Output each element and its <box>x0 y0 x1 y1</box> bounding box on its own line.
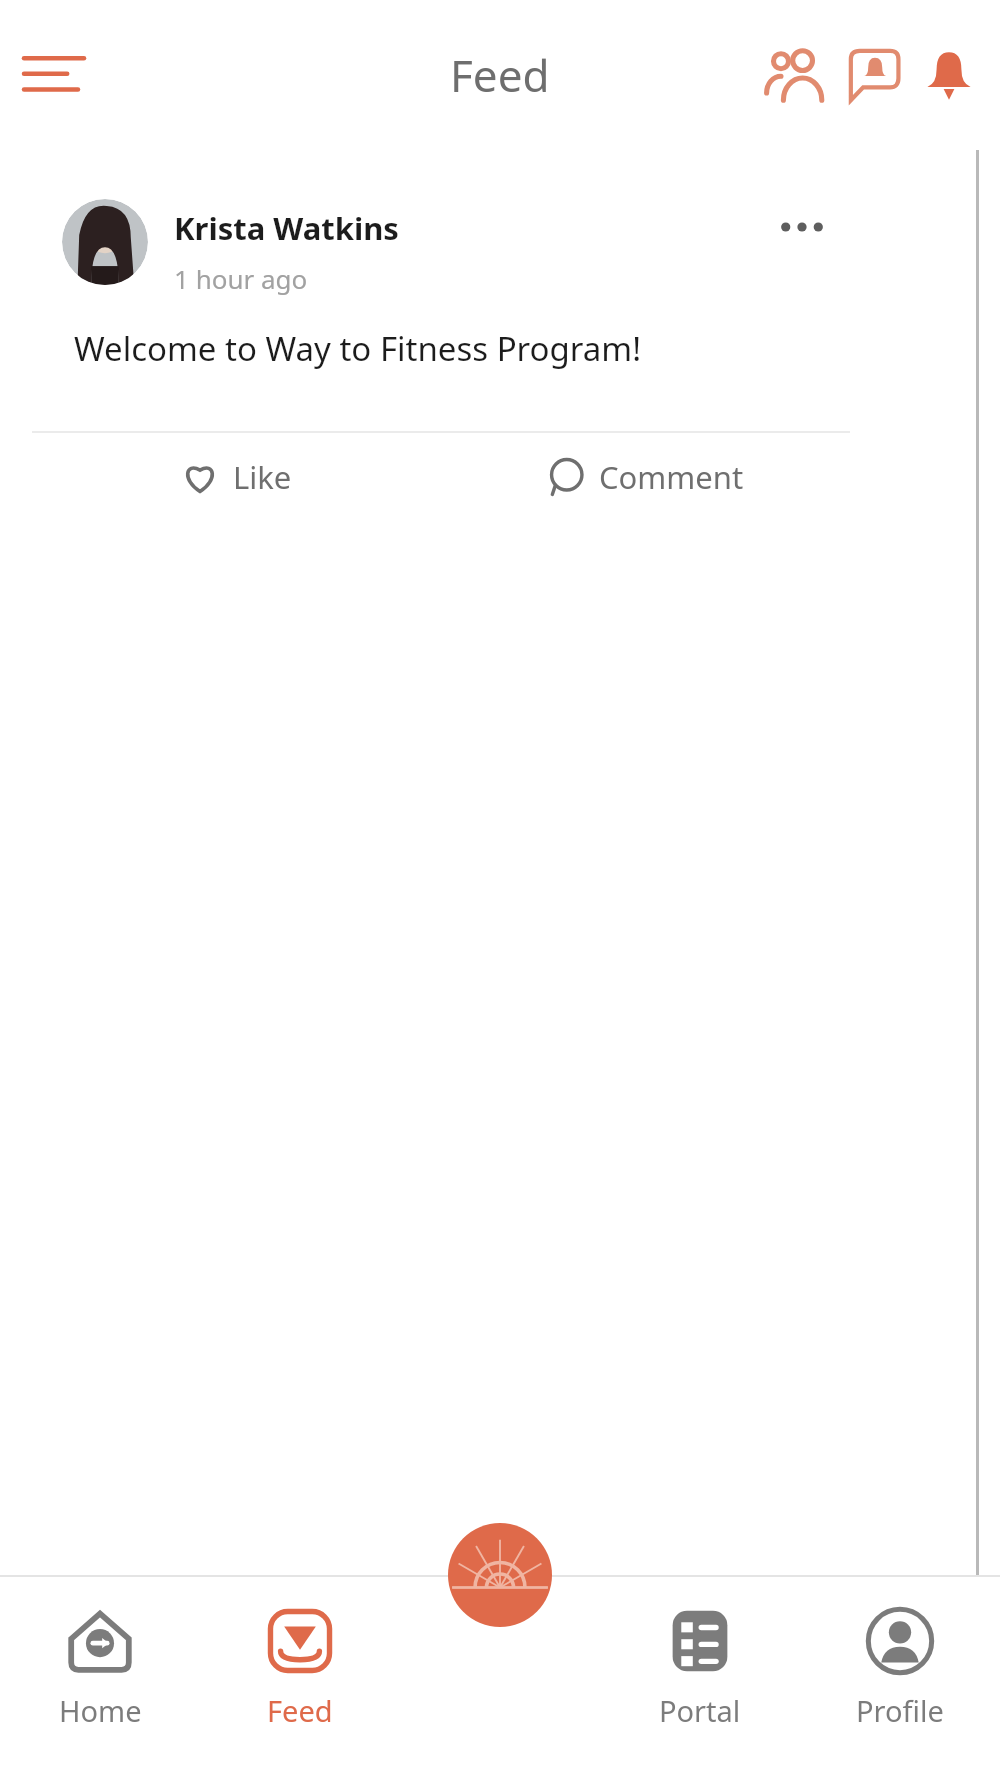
button[interactable]: Feed <box>200 1577 400 1778</box>
staticText: Feed <box>267 1691 333 1730</box>
button[interactable]: Home <box>0 1577 200 1778</box>
button[interactable]: Comment <box>441 433 850 521</box>
button[interactable]: Friends <box>754 36 832 114</box>
staticText: Welcome to Way to Fitness Program! <box>74 326 642 371</box>
button[interactable]: Portal <box>600 1577 800 1778</box>
staticText: Krista Watkins <box>174 207 399 249</box>
staticText: Like <box>233 456 292 498</box>
button[interactable]: Notifications <box>910 36 988 114</box>
staticText: Feed <box>450 45 550 105</box>
staticText: Portal <box>659 1691 741 1730</box>
staticText: Comment <box>599 456 744 498</box>
button[interactable]: More options <box>774 199 830 255</box>
button[interactable]: Menu <box>16 37 92 113</box>
button[interactable]: Like <box>32 433 441 521</box>
button[interactable]: Create post <box>448 1523 552 1627</box>
button[interactable]: Profile <box>800 1577 1000 1778</box>
button[interactable]: Krista Watkins <box>32 175 850 521</box>
button[interactable]: Messages <box>832 36 910 114</box>
staticText: Home <box>59 1691 142 1730</box>
staticText: 1 hour ago <box>174 261 308 296</box>
staticText: Profile <box>856 1691 944 1730</box>
